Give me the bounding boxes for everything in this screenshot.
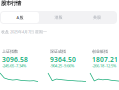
button[interactable]: 港股 [39,12,78,23]
staticText: 港股 [54,15,62,20]
staticText: 上证指数 [2,49,18,54]
button[interactable]: 美股 [78,12,116,23]
staticText: 9364.50 [50,55,76,64]
staticText: -266.18 -12.5% [92,63,116,68]
staticText: 创业板指 [92,49,108,54]
staticText: -904.25 -9.66% [50,63,74,68]
staticText: 1807.21 [92,55,118,64]
staticText: 收盘 2025年4月7日 星期一 [1,29,47,34]
staticText: 美股 [93,15,101,20]
button[interactable]: A股 [1,12,39,23]
staticText: A股 [16,15,23,20]
staticText: 股市行情 [1,0,21,7]
staticText: -245.65 -7.34% [2,63,26,68]
staticText: 深证成指 [50,49,66,54]
staticText: 3096.58 [2,55,28,64]
